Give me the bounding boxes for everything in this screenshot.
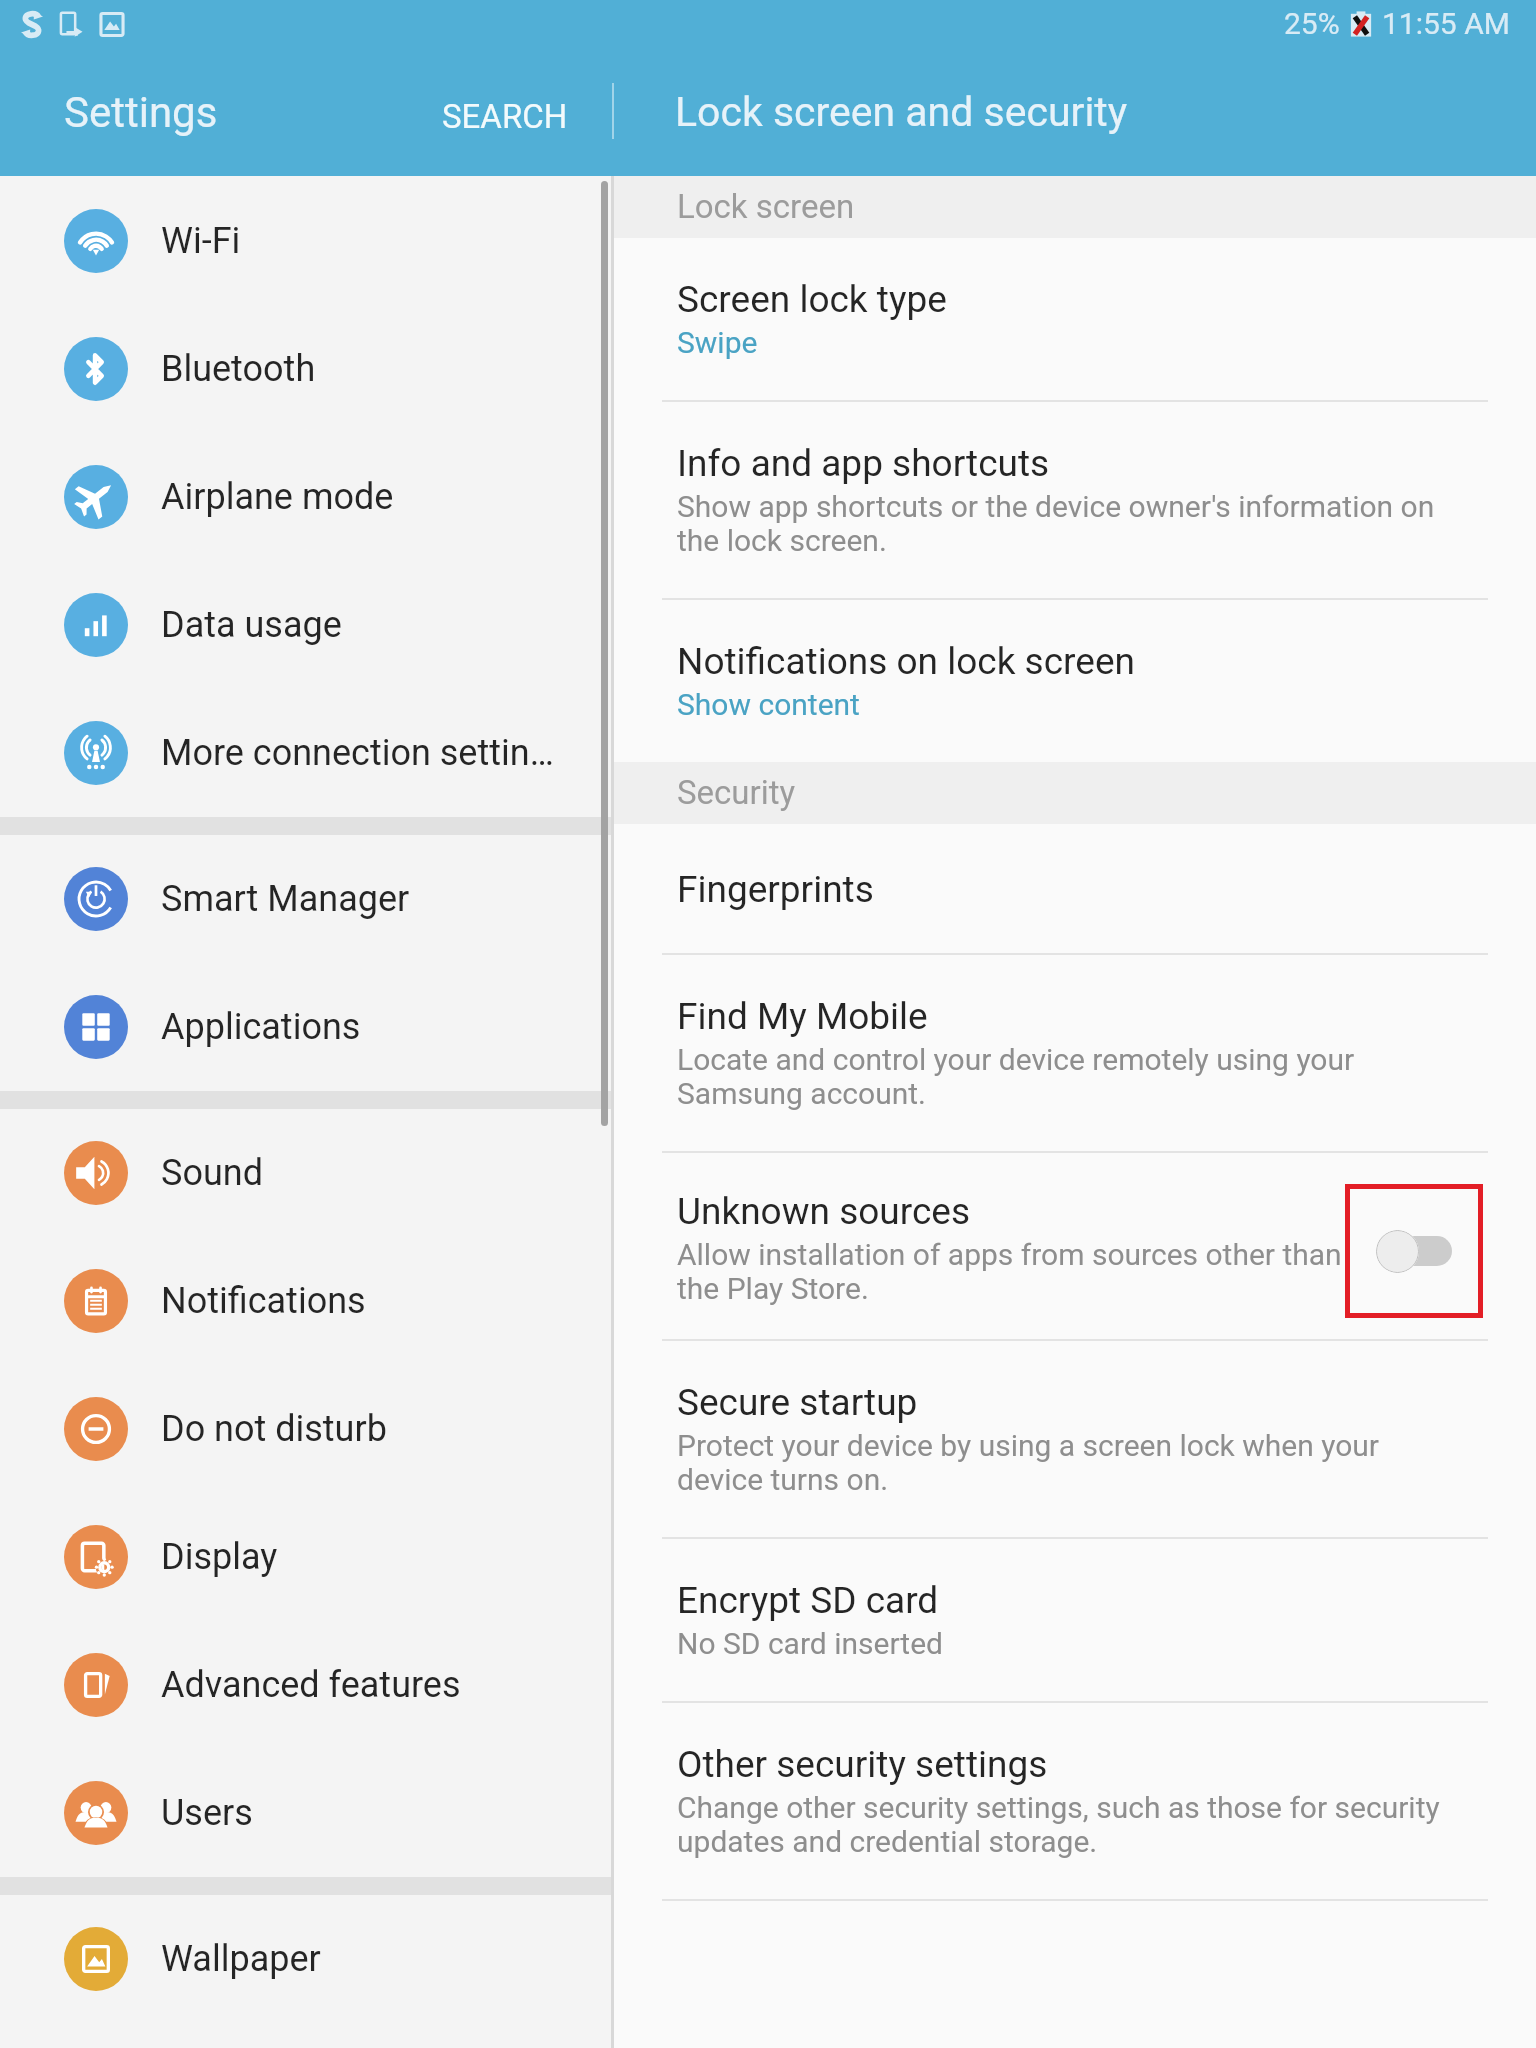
staticText: Show content (677, 687, 860, 722)
staticText: Screen lock type (677, 278, 947, 321)
button[interactable]: Smart Manager (0, 835, 611, 963)
button[interactable]: More connection settin… (0, 689, 611, 817)
button[interactable]: Users (0, 1749, 611, 1877)
button[interactable]: Find My Mobile (614, 955, 1536, 1151)
staticText: Allow installation of apps from sources … (677, 1237, 1342, 1306)
button[interactable]: Sound (0, 1109, 611, 1237)
staticText: Notifications on lock screen (677, 640, 1135, 683)
button[interactable]: Notifications (0, 1237, 611, 1365)
staticText: Advanced features (161, 1664, 461, 1706)
staticText: Settings (64, 88, 218, 137)
staticText: Lock screen and security (675, 88, 1128, 136)
button[interactable]: Screen lock type (614, 238, 1536, 400)
staticText: Data usage (161, 604, 342, 646)
button[interactable]: SEARCH (426, 88, 584, 145)
button[interactable]: Wi-Fi (0, 177, 611, 305)
button[interactable]: Bluetooth (0, 305, 611, 433)
button[interactable]: Applications (0, 963, 611, 1091)
staticText: Unknown sources (677, 1190, 971, 1233)
staticText: Applications (161, 1006, 361, 1048)
staticText: Notifications (161, 1280, 366, 1322)
staticText: Info and app shortcuts (677, 442, 1050, 485)
button[interactable]: Wallpaper (0, 1895, 611, 2023)
button[interactable]: Airplane mode (0, 433, 611, 561)
staticText: 11:55 AM (1382, 6, 1510, 41)
staticText: Change other security settings, such as … (677, 1790, 1446, 1859)
staticText: Bluetooth (161, 348, 316, 390)
staticText: More connection settin… (161, 732, 554, 774)
staticText: Airplane mode (161, 476, 394, 518)
staticText: SEARCH (442, 97, 568, 136)
staticText: No SD card inserted (677, 1626, 943, 1661)
staticText: 25% (1284, 6, 1340, 41)
staticText: Lock screen (677, 187, 855, 226)
staticText: Protect your device by using a screen lo… (677, 1428, 1446, 1497)
staticText: Wallpaper (161, 1938, 321, 1980)
button[interactable]: Fingerprints (614, 824, 1536, 953)
button[interactable]: Display (0, 1493, 611, 1621)
staticText: Sound (161, 1152, 263, 1194)
button[interactable]: Encrypt SD card (614, 1539, 1536, 1701)
staticText: Swipe (677, 325, 758, 360)
staticText: Find My Mobile (677, 995, 928, 1038)
staticText: Display (161, 1536, 278, 1578)
button[interactable]: Secure startup (614, 1341, 1536, 1537)
button[interactable]: Unknown sources (614, 1153, 1536, 1339)
staticText: Locate and control your device remotely … (677, 1042, 1446, 1111)
staticText: Security (677, 773, 796, 812)
staticText: Users (161, 1792, 253, 1834)
staticText: Secure startup (677, 1381, 918, 1424)
button[interactable]: Unknown sources switch (1345, 1184, 1483, 1318)
staticText: Show app shortcuts or the device owner's… (677, 489, 1446, 558)
button[interactable]: Advanced features (0, 1621, 611, 1749)
button[interactable]: Notifications on lock screen (614, 600, 1536, 762)
button[interactable]: Data usage (0, 561, 611, 689)
staticText: Wi-Fi (161, 220, 241, 262)
staticText: Other security settings (677, 1743, 1048, 1786)
button[interactable]: Do not disturb (0, 1365, 611, 1493)
staticText: Encrypt SD card (677, 1579, 939, 1622)
button[interactable]: Other security settings (614, 1703, 1536, 1899)
button[interactable]: Info and app shortcuts (614, 402, 1536, 598)
staticText: Smart Manager (161, 878, 410, 920)
staticText: Fingerprints (677, 868, 874, 911)
staticText: Do not disturb (161, 1408, 387, 1450)
